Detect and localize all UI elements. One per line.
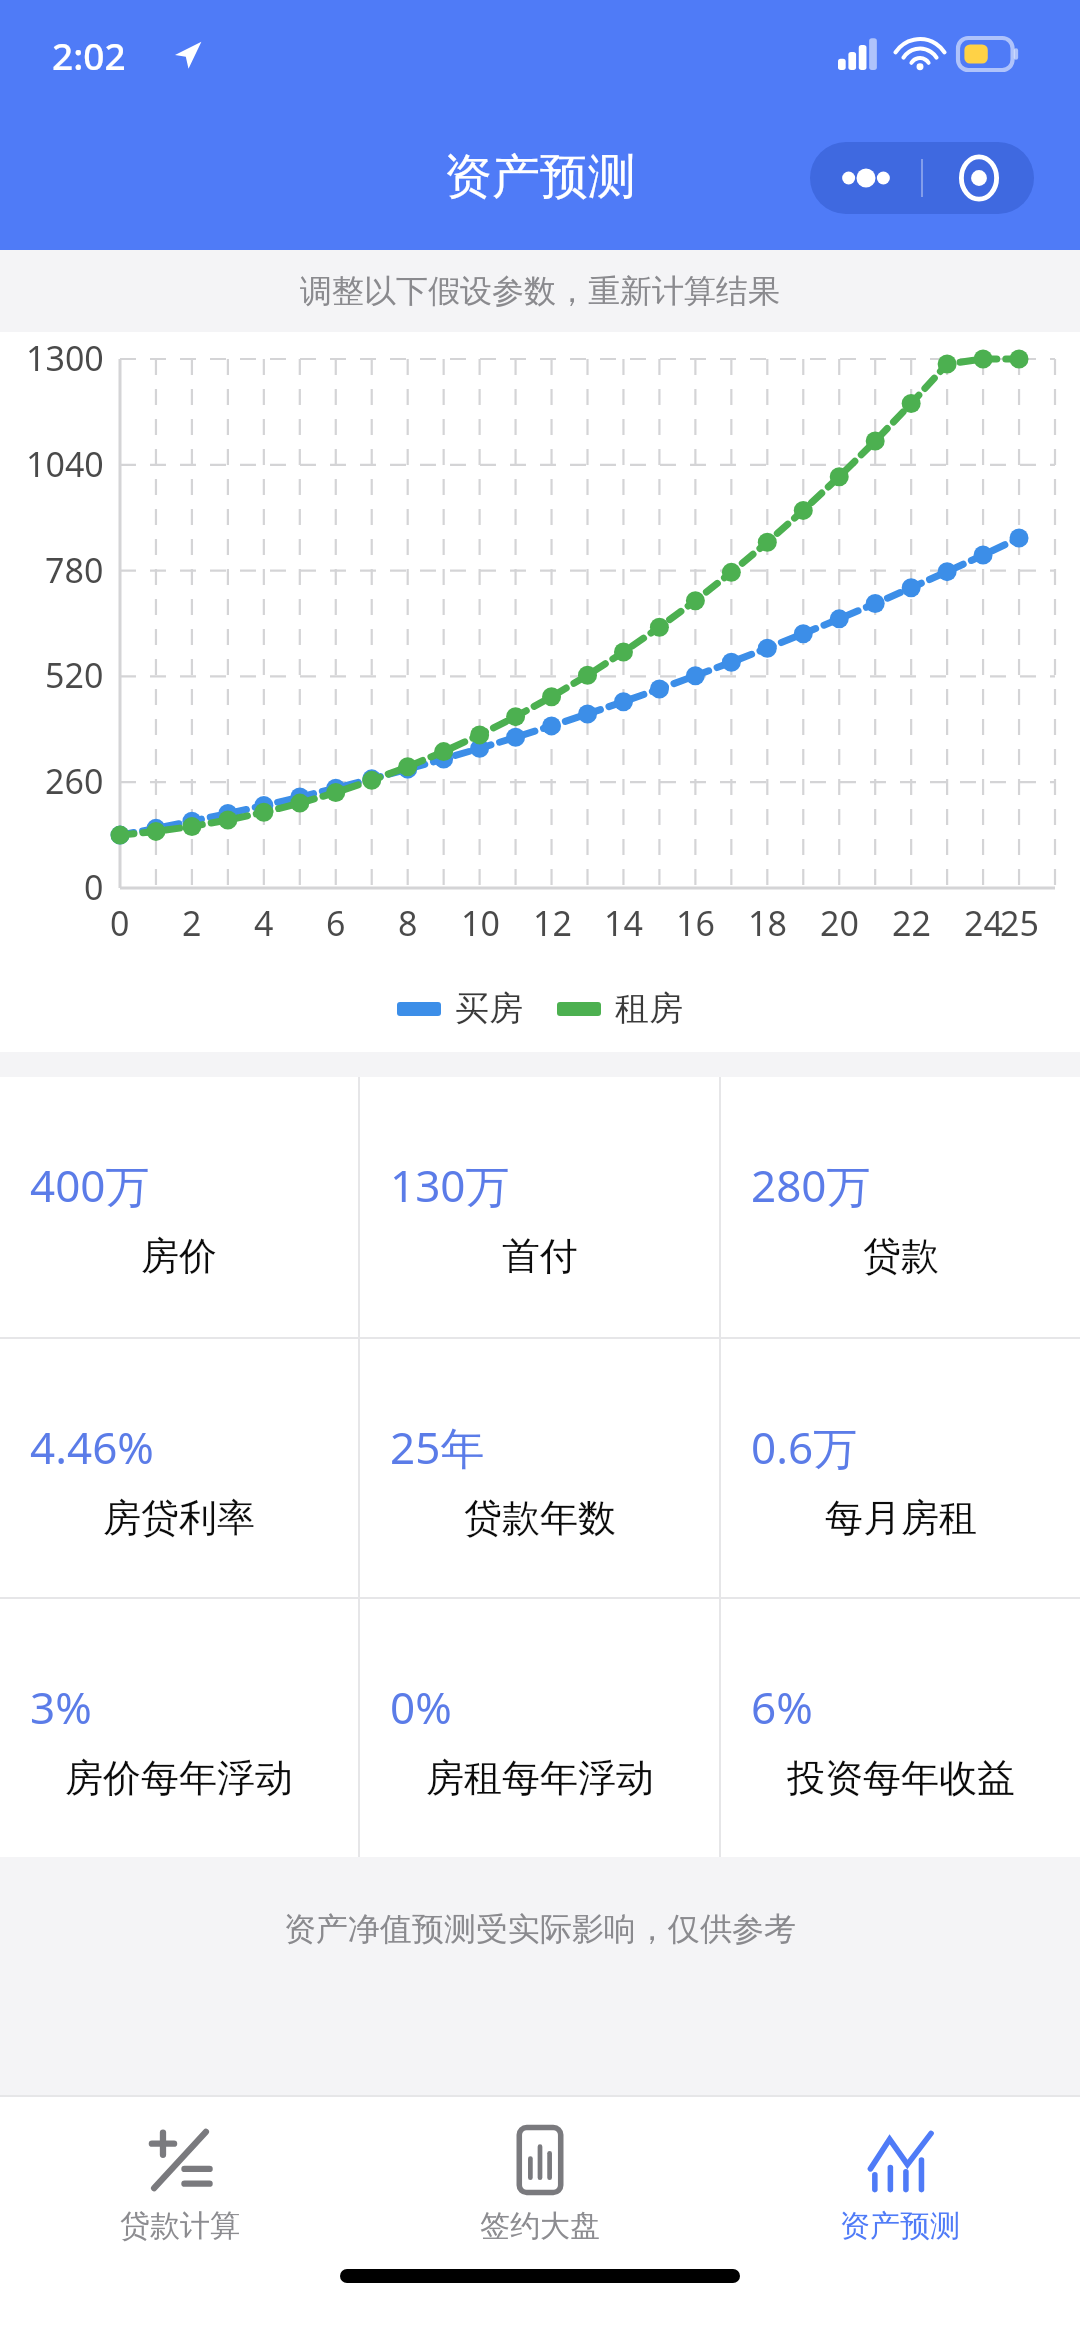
staticText: 买房 bbox=[455, 987, 523, 1030]
button[interactable]: 25年 bbox=[360, 1339, 719, 1597]
staticText: 2 bbox=[182, 900, 202, 946]
staticText: 租房 bbox=[615, 987, 683, 1030]
staticText: 0% bbox=[390, 1677, 452, 1737]
staticText: 首付 bbox=[502, 1232, 578, 1280]
staticText: 20 bbox=[820, 900, 859, 946]
staticText: 14 bbox=[604, 900, 643, 946]
staticText: 520 bbox=[45, 652, 104, 698]
staticText: 10 bbox=[461, 900, 500, 946]
button[interactable]: 资产预测 bbox=[720, 2097, 1080, 2247]
staticText: 400万 bbox=[30, 1155, 150, 1215]
button[interactable]: 0.6万 bbox=[721, 1339, 1080, 1597]
button[interactable]: More and close bbox=[810, 142, 1034, 214]
staticText: 8 bbox=[398, 900, 418, 946]
staticText: 1300 bbox=[26, 335, 104, 381]
button[interactable]: 400万 bbox=[0, 1077, 358, 1337]
staticText: 贷款年数 bbox=[464, 1494, 616, 1542]
staticText: 0 bbox=[84, 864, 104, 910]
staticText: 房价每年浮动 bbox=[65, 1754, 293, 1802]
button[interactable]: 130万 bbox=[360, 1077, 719, 1337]
staticText: 调整以下假设参数，重新计算结果 bbox=[300, 271, 780, 311]
staticText: 18 bbox=[748, 900, 787, 946]
staticText: 投资每年收益 bbox=[787, 1754, 1015, 1802]
staticText: 12 bbox=[533, 900, 572, 946]
staticText: 签约大盘 bbox=[480, 2207, 600, 2245]
staticText: 780 bbox=[45, 547, 104, 593]
staticText: 贷款 bbox=[863, 1232, 939, 1280]
staticText: 3% bbox=[30, 1677, 92, 1737]
staticText: 22 bbox=[892, 900, 931, 946]
button[interactable]: 3% bbox=[0, 1599, 358, 1857]
staticText: 25 bbox=[1000, 900, 1039, 946]
staticText: 4 bbox=[254, 900, 274, 946]
button[interactable]: 280万 bbox=[721, 1077, 1080, 1337]
button[interactable]: 0% bbox=[360, 1599, 719, 1857]
staticText: 16 bbox=[676, 900, 715, 946]
button[interactable]: 4.46% bbox=[0, 1339, 358, 1597]
button[interactable]: 6% bbox=[721, 1599, 1080, 1857]
staticText: 2:02 bbox=[52, 30, 126, 80]
staticText: 1040 bbox=[26, 441, 104, 487]
staticText: 260 bbox=[45, 758, 104, 804]
staticText: 房贷利率 bbox=[103, 1494, 255, 1542]
staticText: 每月房租 bbox=[825, 1494, 977, 1542]
staticText: 资产预测 bbox=[444, 147, 636, 207]
staticText: 0 bbox=[110, 900, 130, 946]
staticText: 24 bbox=[964, 900, 1003, 946]
staticText: 4.46% bbox=[30, 1417, 154, 1477]
staticText: 贷款计算 bbox=[120, 2207, 240, 2245]
staticText: 资产预测 bbox=[840, 2207, 960, 2245]
staticText: 6% bbox=[751, 1677, 813, 1737]
staticText: 资产净值预测受实际影响，仅供参考 bbox=[284, 1909, 796, 1949]
staticText: 房租每年浮动 bbox=[426, 1754, 654, 1802]
staticText: 房价 bbox=[141, 1232, 217, 1280]
staticText: 130万 bbox=[390, 1155, 510, 1215]
staticText: 0.6万 bbox=[751, 1417, 858, 1477]
staticText: 6 bbox=[326, 900, 346, 946]
button[interactable]: 签约大盘 bbox=[360, 2097, 720, 2247]
staticText: 280万 bbox=[751, 1155, 871, 1215]
button[interactable]: 贷款计算 bbox=[0, 2097, 360, 2247]
staticText: 25年 bbox=[390, 1417, 485, 1477]
